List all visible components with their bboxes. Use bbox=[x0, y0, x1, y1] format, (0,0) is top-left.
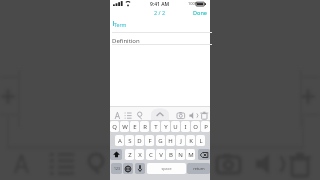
staticText: U bbox=[173, 123, 178, 131]
staticText: 123 bbox=[114, 166, 120, 171]
staticText: 9:41 AM bbox=[150, 1, 170, 8]
button[interactable]: X bbox=[135, 149, 144, 160]
button[interactable]: M bbox=[186, 149, 195, 160]
button[interactable]: C bbox=[146, 149, 155, 160]
button[interactable]: return bbox=[187, 163, 210, 174]
staticText: F bbox=[148, 137, 152, 145]
button[interactable]: Definition bbox=[110, 33, 210, 45]
button[interactable]: I bbox=[181, 121, 190, 132]
staticText: K bbox=[189, 137, 193, 145]
button[interactable]: O bbox=[191, 121, 200, 132]
staticText: W bbox=[122, 123, 128, 131]
staticText: X bbox=[138, 151, 142, 159]
staticText: I bbox=[184, 123, 187, 131]
button[interactable]: G bbox=[156, 135, 165, 146]
button[interactable]: R bbox=[140, 121, 149, 132]
staticText: D bbox=[137, 137, 142, 145]
button[interactable]: D bbox=[135, 135, 144, 146]
button[interactable]: B bbox=[166, 149, 175, 160]
staticText: 2 / 2 bbox=[154, 9, 166, 16]
button[interactable]: Q bbox=[110, 121, 119, 132]
staticText: E bbox=[133, 123, 137, 131]
button[interactable]: J bbox=[176, 135, 185, 146]
button[interactable]: Switch keyboard bbox=[123, 163, 133, 174]
staticText: Y bbox=[164, 123, 168, 131]
staticText: V bbox=[159, 151, 163, 159]
staticText: return bbox=[193, 166, 205, 171]
button[interactable]: V bbox=[156, 149, 165, 160]
button[interactable]: N bbox=[176, 149, 185, 160]
staticText: S bbox=[128, 137, 132, 145]
button[interactable]: Term bbox=[110, 18, 210, 33]
button[interactable]: Done bbox=[190, 8, 210, 17]
button[interactable]: T bbox=[151, 121, 160, 132]
staticText: B bbox=[169, 151, 173, 159]
staticText: R bbox=[143, 123, 147, 131]
button[interactable]: E bbox=[130, 121, 139, 132]
staticText: 100% bbox=[188, 1, 199, 6]
staticText: space bbox=[161, 166, 172, 171]
button[interactable]: Shift bbox=[110, 149, 122, 160]
button[interactable]: U bbox=[171, 121, 180, 132]
button[interactable]: A bbox=[115, 135, 124, 146]
staticText: O bbox=[193, 123, 198, 131]
staticText: M bbox=[188, 151, 194, 159]
button[interactable]: W bbox=[120, 121, 129, 132]
button[interactable]: Y bbox=[161, 121, 170, 132]
button[interactable]: space bbox=[147, 163, 186, 174]
staticText: Term bbox=[114, 21, 127, 28]
staticText: G bbox=[158, 137, 163, 145]
button[interactable]: Backspace bbox=[198, 149, 210, 160]
staticText: Z bbox=[128, 151, 132, 159]
staticText: T bbox=[154, 123, 158, 131]
button[interactable]: H bbox=[166, 135, 175, 146]
button[interactable]: L bbox=[196, 135, 205, 146]
button[interactable]: 123 bbox=[111, 163, 122, 174]
button[interactable]: F bbox=[145, 135, 154, 146]
staticText: Definition bbox=[112, 37, 140, 45]
button[interactable]: Dictate bbox=[135, 163, 145, 174]
button[interactable]: Z bbox=[125, 149, 134, 160]
staticText: N bbox=[178, 151, 183, 159]
button[interactable]: K bbox=[186, 135, 195, 146]
staticText: Q bbox=[112, 123, 117, 131]
staticText: C bbox=[149, 151, 153, 159]
staticText: Done bbox=[193, 9, 207, 16]
staticText: L bbox=[199, 137, 203, 145]
staticText: J bbox=[180, 137, 182, 145]
staticText: A bbox=[118, 137, 122, 145]
button[interactable]: P bbox=[201, 121, 210, 132]
button[interactable]: S bbox=[125, 135, 134, 146]
staticText: H bbox=[168, 137, 173, 145]
staticText: P bbox=[204, 123, 208, 131]
